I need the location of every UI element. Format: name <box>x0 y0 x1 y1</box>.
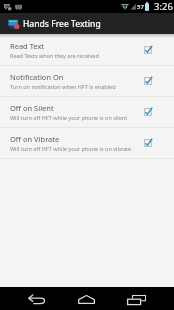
staticText: Will turn off HFT while your phone is on… <box>10 145 132 152</box>
staticText: Hands Free Texting <box>23 18 101 30</box>
staticText: Off on Vibrate <box>10 134 60 144</box>
button[interactable]: Notification On <box>0 66 174 97</box>
button[interactable]: Recent apps <box>112 287 161 310</box>
staticText: 57 <box>137 3 144 11</box>
button[interactable]: Off on Vibrate <box>0 128 174 159</box>
staticText: Off on Silent <box>10 103 54 113</box>
staticText: Turn on notification when HFT is enabled <box>10 83 116 90</box>
button[interactable]: Read Text <box>0 35 174 66</box>
staticText: Read Texts when they are received <box>10 52 99 59</box>
button[interactable]: Off on Silent <box>0 97 174 128</box>
staticText: Notification On <box>10 72 64 82</box>
staticText: 3:26 <box>154 0 173 13</box>
staticText: Read Text <box>10 41 45 51</box>
staticText: Will turn off HFT while your phone is on… <box>10 114 128 121</box>
button[interactable]: Home <box>62 287 111 310</box>
button[interactable]: Back <box>12 287 61 310</box>
